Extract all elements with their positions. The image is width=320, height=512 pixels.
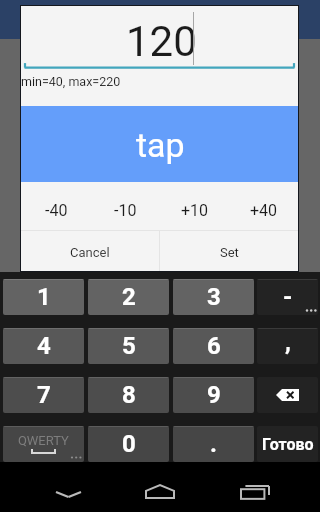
button[interactable]: 3 bbox=[173, 279, 254, 315]
button[interactable]: Recent apps bbox=[198, 462, 306, 512]
button[interactable]: 6 bbox=[173, 328, 254, 364]
button[interactable]: . bbox=[173, 426, 254, 462]
staticText: tap bbox=[136, 125, 185, 165]
button[interactable]: tap bbox=[21, 106, 298, 182]
button[interactable]: 2 bbox=[88, 279, 169, 315]
button[interactable]: +10 bbox=[160, 182, 229, 230]
button[interactable]: Hide keyboard bbox=[14, 462, 122, 512]
button[interactable]: 9 bbox=[173, 377, 254, 413]
other: Switch to QWERTY keyboard bbox=[3, 426, 84, 462]
other: Backspace bbox=[276, 389, 299, 401]
staticText: +10 bbox=[181, 201, 209, 220]
button[interactable]: 0 bbox=[88, 426, 169, 462]
staticText: , bbox=[285, 328, 291, 356]
button[interactable]: 1 bbox=[3, 279, 84, 315]
staticText: - bbox=[283, 283, 293, 311]
staticText: QWERTY bbox=[18, 433, 69, 448]
staticText: 5 bbox=[122, 332, 136, 360]
staticText: 9 bbox=[207, 381, 221, 409]
button[interactable]: Готово bbox=[257, 426, 318, 462]
button[interactable]: -40 bbox=[21, 182, 91, 230]
button[interactable]: , bbox=[257, 328, 318, 364]
button[interactable]: Switch to QWERTY keyboard bbox=[3, 426, 84, 462]
staticText: Set bbox=[220, 245, 239, 260]
staticText: 0 bbox=[122, 430, 136, 458]
button[interactable]: 8 bbox=[88, 377, 169, 413]
staticText: 8 bbox=[122, 381, 136, 409]
staticText: 2 bbox=[122, 283, 136, 311]
staticText: 120 bbox=[126, 17, 197, 66]
button[interactable]: +40 bbox=[229, 182, 298, 230]
staticText: 4 bbox=[37, 332, 51, 360]
button[interactable]: 4 bbox=[3, 328, 84, 364]
staticText: 1 bbox=[37, 283, 51, 311]
staticText: 3 bbox=[207, 283, 221, 311]
staticText: min=40, max=220 bbox=[21, 74, 121, 89]
button[interactable]: Set bbox=[160, 231, 298, 271]
button[interactable]: 5 bbox=[88, 328, 169, 364]
staticText: . bbox=[210, 430, 217, 458]
staticText: -10 bbox=[114, 201, 137, 220]
staticText: 6 bbox=[207, 332, 221, 360]
staticText: Cancel bbox=[70, 245, 110, 260]
staticText: -40 bbox=[45, 201, 68, 220]
button[interactable]: Backspace bbox=[257, 377, 318, 413]
button[interactable]: Cancel bbox=[21, 231, 159, 271]
staticText: 7 bbox=[37, 381, 51, 409]
staticText: Готово bbox=[262, 435, 314, 454]
staticText: +40 bbox=[250, 201, 278, 220]
button[interactable]: Home bbox=[122, 462, 198, 512]
button[interactable]: - bbox=[257, 279, 318, 315]
button[interactable]: 7 bbox=[3, 377, 84, 413]
button[interactable]: -10 bbox=[91, 182, 160, 230]
